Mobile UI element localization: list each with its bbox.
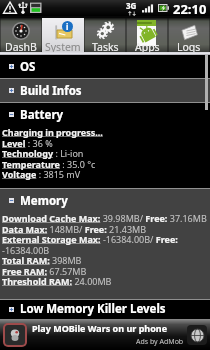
staticText: Download Cache Max: 39.98MB/ Free: 37.16… <box>2 212 207 224</box>
button[interactable]: Open ad <box>187 325 207 345</box>
button[interactable]: i <box>42 18 84 52</box>
staticText: i <box>66 21 69 32</box>
staticText: Build Infos <box>20 83 82 99</box>
button[interactable]: Build Infos <box>0 79 210 102</box>
button[interactable]: Memory <box>0 189 210 212</box>
button[interactable]: Play MOBile Wars on ur phone <box>0 319 210 350</box>
button[interactable]: DashB <box>0 18 42 52</box>
staticText: Battery <box>20 107 64 123</box>
staticText: 22:10 <box>173 0 207 16</box>
button[interactable]: Battery <box>0 103 210 126</box>
staticText: Data Max: 148MB/ Free: 21.43MB <box>2 223 147 235</box>
staticText: Voltage : 3815 mV <box>2 168 81 180</box>
staticText: 3G <box>126 0 137 11</box>
staticText: Technology : Li-ion <box>2 147 84 159</box>
button[interactable]: OS <box>0 55 210 78</box>
staticText: Apps <box>135 40 160 54</box>
button[interactable]: Logs <box>168 18 210 52</box>
staticText: Ads by AdMob <box>136 337 184 347</box>
staticText: Level : 36 % <box>2 137 53 149</box>
staticText: Logs <box>177 40 201 54</box>
staticText: Threshold RAM: 24.00MB <box>2 275 112 287</box>
staticText: -16384.00B <box>2 244 50 256</box>
staticText: Low Memory Killer Levels <box>20 301 166 317</box>
staticText: DashB <box>5 40 37 54</box>
staticText: Tasks <box>92 40 119 54</box>
staticText: Play MOBile Wars on ur phone <box>32 322 168 334</box>
staticText: Total RAM: 398MB <box>2 254 82 266</box>
staticText: Temperature : 35.0 °c <box>2 158 96 170</box>
staticText: Charging in progress... <box>2 126 103 138</box>
button[interactable]: Tasks <box>84 18 126 52</box>
staticText: Memory <box>20 193 68 209</box>
staticText: Free RAM: 67.57MB <box>2 265 87 277</box>
button[interactable]: Low Memory Killer Levels <box>0 300 210 318</box>
staticText: External Storage Max: -16384.00B/ Free: <box>2 233 178 245</box>
button[interactable]: Apps <box>126 18 168 52</box>
staticText: System <box>45 40 81 54</box>
staticText: OS <box>20 59 36 75</box>
